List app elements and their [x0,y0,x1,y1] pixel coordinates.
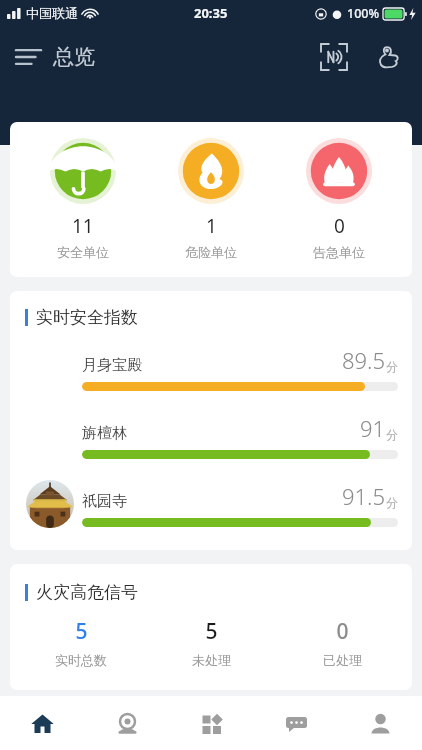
staticText: 5 [75,617,88,646]
staticText: 中国联通 [26,5,78,21]
staticText: 未处理 [192,652,231,668]
button[interactable]: Touch control [368,37,408,77]
button[interactable]: 祇园寺 [10,478,412,530]
staticText: 分 [386,359,398,374]
button[interactable]: Menu [10,38,101,76]
staticText: 89.5 [342,345,386,375]
staticText: 11 [72,213,94,239]
staticText: 旃檀林 [82,424,127,443]
staticText: 月身宝殿 [82,356,142,375]
staticText: 100% [347,5,380,22]
button[interactable]: 0 [284,138,394,260]
button[interactable]: 月身宝殿 [10,342,412,394]
button[interactable]: Apps [170,696,254,750]
staticText: 分 [386,495,398,510]
button[interactable]: Scan NFC [314,37,354,77]
button[interactable]: Profile [338,696,422,750]
staticText: 实时总数 [55,652,107,668]
staticText: 91.5 [342,481,386,511]
button[interactable]: 1 [156,138,266,260]
staticText: 91 [360,413,386,443]
button[interactable]: 11 [28,138,138,260]
staticText: 分 [386,427,398,442]
staticText: 1 [206,213,217,239]
staticText: 0 [334,213,345,239]
button[interactable]: Monitor [85,696,170,750]
staticText: 已处理 [323,652,362,668]
staticText: 火灾高危信号 [36,582,138,603]
staticText: 告急单位 [313,244,365,260]
staticText: 实时安全指数 [36,307,138,328]
staticText: 安全单位 [57,244,109,260]
staticText: 总览 [53,44,95,70]
button[interactable]: 旃檀林 [10,410,412,462]
button[interactable]: 0 [282,617,402,668]
staticText: 20:35 [194,4,228,22]
button[interactable]: Messages [254,696,338,750]
button[interactable]: Home [0,696,85,750]
staticText: 祇园寺 [82,492,127,511]
other: Menu [16,48,41,66]
staticText: 5 [205,617,218,646]
button[interactable]: 5 [21,617,141,668]
button[interactable]: 5 [151,617,271,668]
staticText: 危险单位 [185,244,237,260]
staticText: 0 [336,617,349,646]
